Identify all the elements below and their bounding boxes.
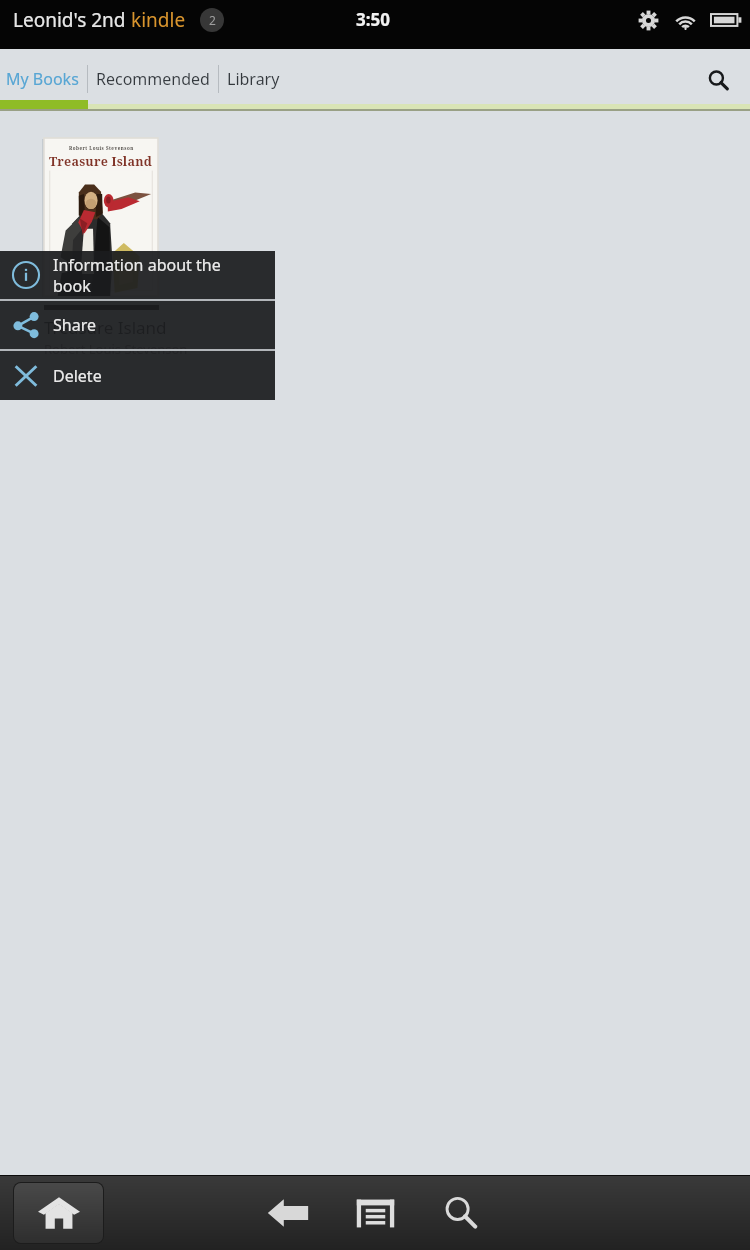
button[interactable]: Delete — [0, 351, 275, 400]
button[interactable]: Robert Louis Stevenson — [44, 138, 158, 296]
staticText: Delete — [53, 365, 102, 387]
button[interactable]: Home — [14, 1183, 103, 1243]
button[interactable]: My Books — [0, 66, 87, 92]
staticText: Treasure Island — [49, 153, 153, 170]
staticText: Recommended — [96, 68, 210, 90]
staticText: Library — [227, 68, 280, 90]
staticText: kindle — [131, 7, 186, 33]
staticText: Treasure Island — [44, 316, 167, 339]
button[interactable]: Recommended — [88, 66, 218, 92]
staticText: Information about the book — [53, 254, 221, 297]
button[interactable]: Library — [219, 66, 288, 92]
staticText: Leonid's 2nd — [13, 7, 131, 33]
staticText: Share — [53, 314, 96, 336]
staticText: Robert Louis Stevenson — [44, 340, 188, 358]
staticText: Robert Louis Stevenson — [69, 145, 134, 151]
button[interactable]: Information about the book — [0, 251, 275, 299]
button[interactable]: Share — [0, 301, 275, 349]
staticText: 2 — [209, 12, 216, 28]
staticText: My Books — [6, 68, 79, 90]
staticText: 3:50 — [356, 8, 390, 31]
button[interactable]: Menu — [344, 1182, 406, 1244]
button[interactable]: Search — [430, 1182, 492, 1244]
button[interactable]: Search — [694, 56, 742, 104]
button[interactable]: Back — [257, 1182, 319, 1244]
